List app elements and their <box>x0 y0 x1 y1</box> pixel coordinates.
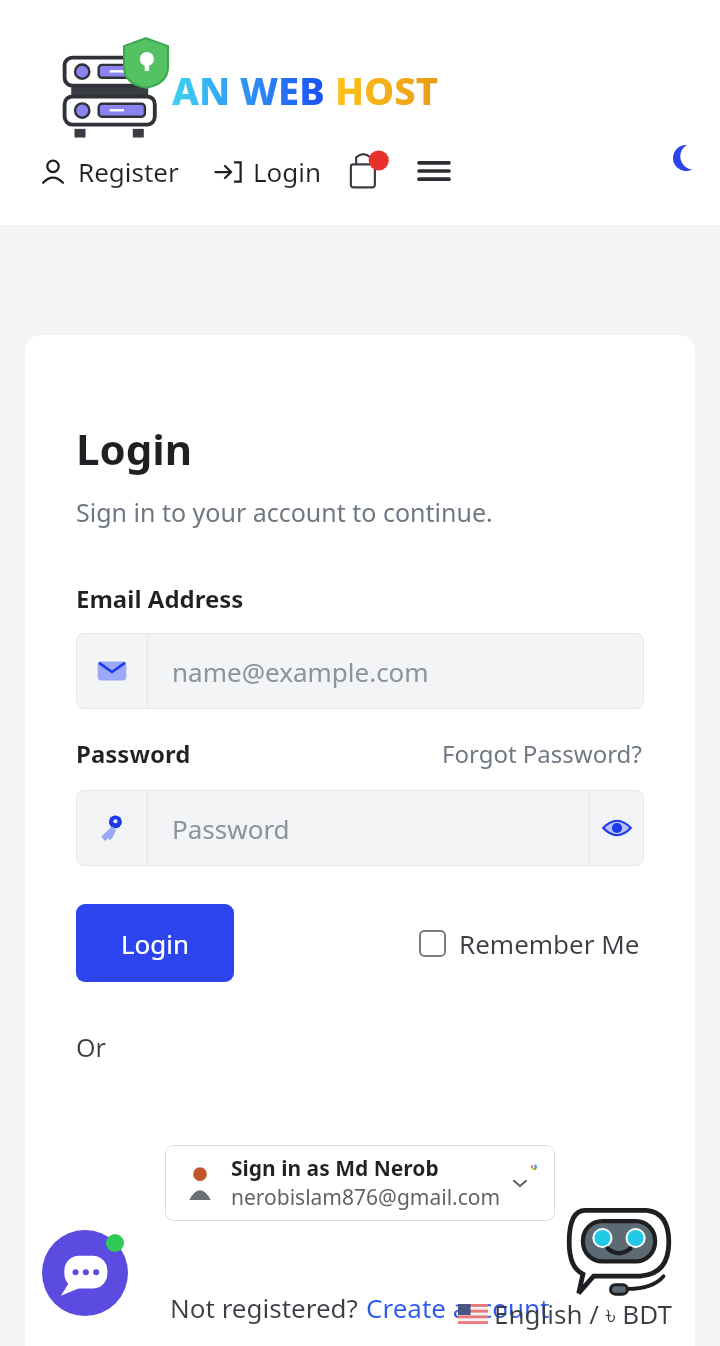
staticText: name@example.com <box>172 654 429 689</box>
staticText: Login <box>253 154 322 189</box>
button[interactable]: Forgot Password? <box>440 735 644 772</box>
staticText: AN WEB <box>172 64 325 116</box>
button[interactable]: Cart, 0 items <box>348 148 396 194</box>
button[interactable]: Remember Me <box>415 922 644 965</box>
button[interactable]: name@example.com <box>76 633 644 709</box>
button[interactable]: Login <box>209 150 326 193</box>
staticText: English / ৳ BDT <box>494 1296 672 1331</box>
staticText: nerobislam876@gmail.com <box>231 1183 501 1212</box>
staticText: Sign in to your account to continue. <box>76 495 493 529</box>
button[interactable]: Login <box>76 904 234 982</box>
button[interactable]: Create account <box>366 1290 550 1325</box>
staticText: Remember Me <box>459 926 640 961</box>
staticText: Forgot Password? <box>442 737 642 770</box>
button[interactable]: Open chat <box>42 1230 128 1316</box>
staticText: Create account <box>366 1290 550 1325</box>
staticText: Password <box>76 737 191 770</box>
staticText: Register <box>78 154 179 189</box>
button[interactable]: Register <box>34 150 183 193</box>
staticText: Not registered? <box>170 1290 358 1325</box>
button[interactable]: Sign in as Md Nerob <box>165 1145 555 1221</box>
staticText: Or <box>76 1030 106 1064</box>
button[interactable]: Chat assistant <box>566 1202 672 1308</box>
button[interactable]: Dark mode <box>664 136 708 180</box>
staticText: Password <box>172 811 290 846</box>
staticText: Email Address <box>76 582 244 615</box>
button[interactable]: Password <box>76 790 644 866</box>
button[interactable]: Menu <box>414 151 454 191</box>
staticText: Sign in as Md Nerob <box>231 1154 439 1183</box>
button[interactable]: Show password <box>590 790 644 866</box>
button[interactable]: English / ৳ BDT <box>455 1293 675 1334</box>
staticText: Login <box>121 926 190 961</box>
staticText: Login <box>76 420 193 477</box>
staticText: HOST <box>335 64 438 116</box>
